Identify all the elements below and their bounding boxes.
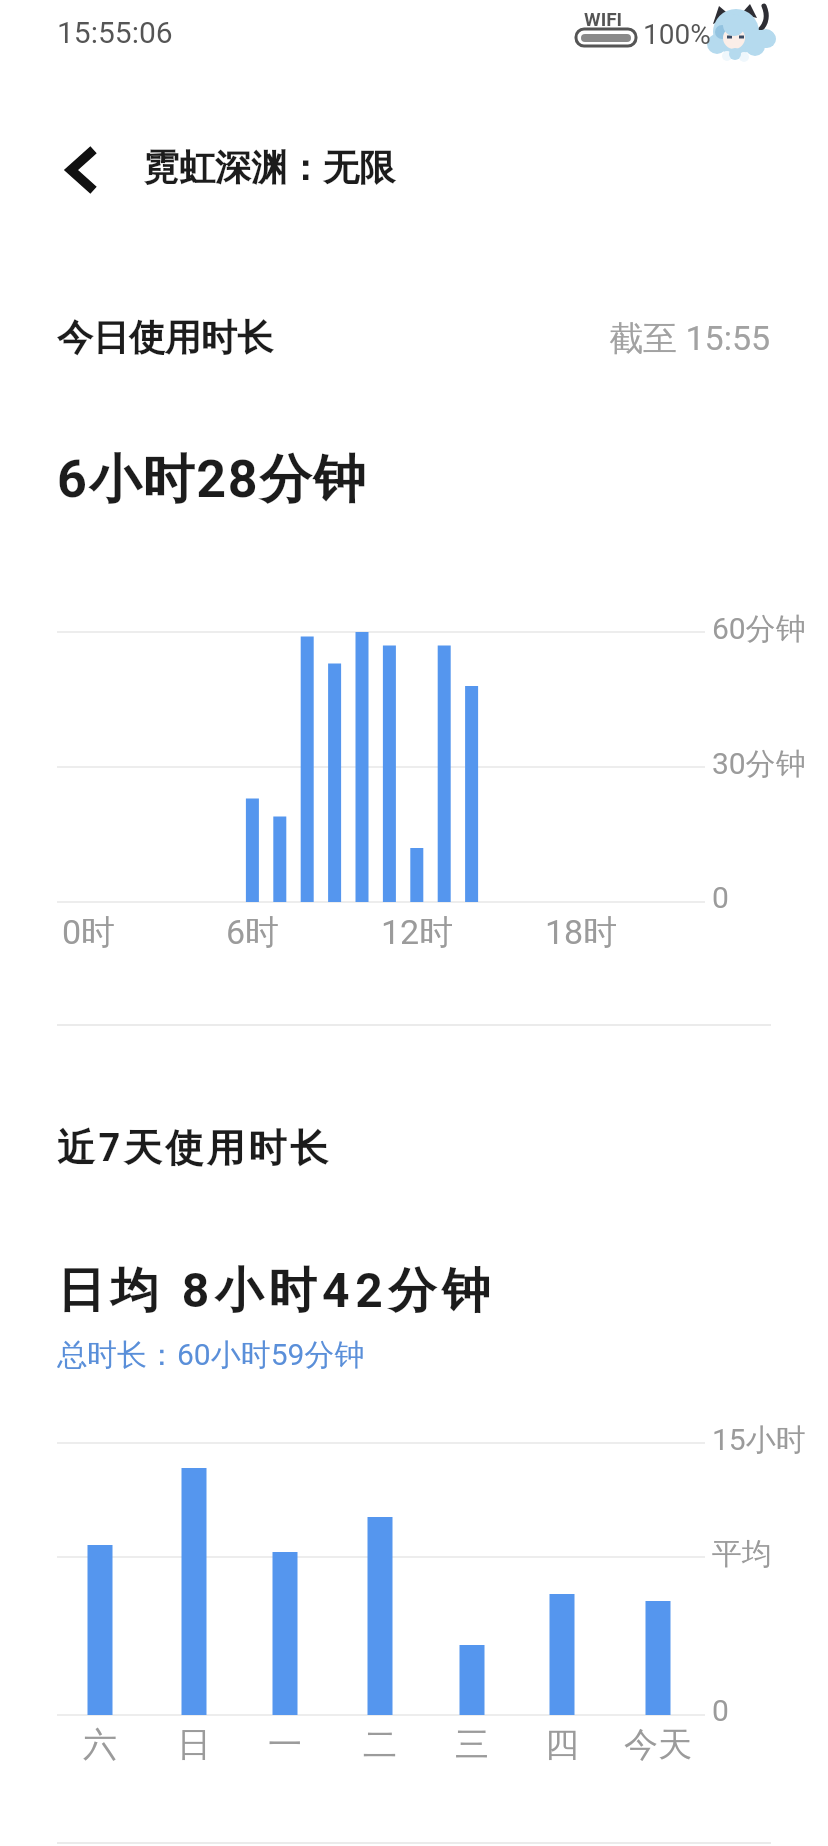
staticText: 60分钟 [712,610,806,648]
staticText: 今天 [624,1723,692,1766]
staticText: 15:55:06 [57,15,173,50]
staticText: 日均 8小时42分钟 [57,1261,496,1321]
button[interactable]: 霓虹深渊：无限 [57,134,577,200]
staticText: 15小时 [712,1421,806,1459]
staticText: 18时 [545,911,618,954]
staticText: 0时 [62,911,116,954]
staticText: 六 [83,1723,117,1766]
staticText: 截至 15:55 [609,317,771,360]
staticText: 30分钟 [712,745,806,783]
staticText: 12时 [381,911,454,954]
staticText: 0 [712,880,729,915]
staticText: 三 [455,1723,489,1766]
staticText: 霓虹深渊：无限 [143,145,395,190]
staticText: 6小时28分钟 [57,447,368,513]
staticText: 6时 [226,911,280,954]
staticText: 今日使用时长 [57,315,273,360]
staticText: 100% [643,18,711,51]
staticText: 总时长：60小时59分钟 [57,1336,365,1374]
staticText: 0 [712,1693,729,1728]
staticText: 平均 [712,1535,772,1573]
staticText: 一 [268,1723,302,1766]
staticText: WIFI [584,8,623,30]
staticText: 二 [363,1723,397,1766]
staticText: 近7天使用时长 [57,1124,332,1172]
staticText: 日 [177,1723,211,1766]
staticText: 四 [545,1723,579,1766]
